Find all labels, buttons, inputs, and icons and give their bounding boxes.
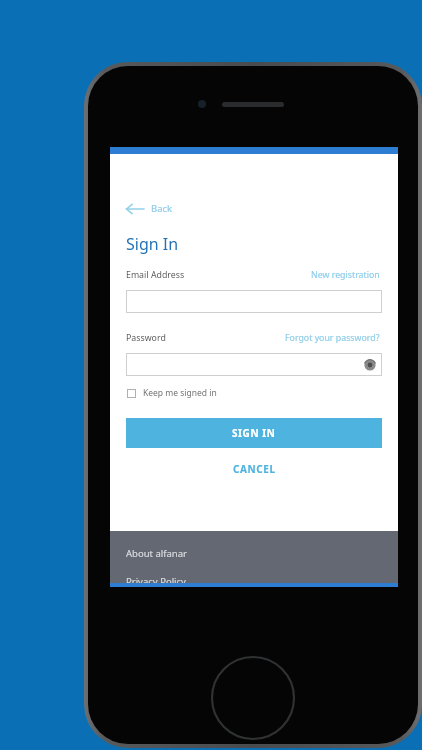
staticText: Email Address	[126, 269, 185, 281]
staticText: Forgot your password?	[285, 332, 380, 344]
staticText: New registration	[311, 269, 380, 281]
staticText: Keep me signed in	[143, 387, 217, 399]
other: Show password	[363, 358, 377, 372]
staticText: SIGN IN	[232, 426, 276, 440]
button[interactable]: Show password	[126, 353, 382, 376]
button[interactable]: Keep me signed in	[126, 385, 218, 401]
staticText: Privacy Policy	[126, 575, 186, 586]
staticText: About alfanar	[126, 547, 187, 560]
button[interactable]: Forgot your password?	[283, 330, 382, 346]
button[interactable]	[126, 290, 382, 313]
button[interactable]: About alfanar	[110, 546, 398, 561]
button[interactable]: CANCEL	[223, 459, 286, 479]
staticText: Sign In	[126, 233, 179, 255]
button[interactable]: Privacy Policy	[110, 574, 398, 587]
button[interactable]: Back	[124, 198, 175, 219]
staticText: CANCEL	[233, 462, 276, 476]
staticText: Password	[126, 332, 166, 344]
button[interactable]: SIGN IN	[126, 418, 382, 448]
button[interactable]: New registration	[309, 267, 382, 283]
staticText: Back	[151, 202, 173, 215]
other: Back	[126, 203, 144, 215]
